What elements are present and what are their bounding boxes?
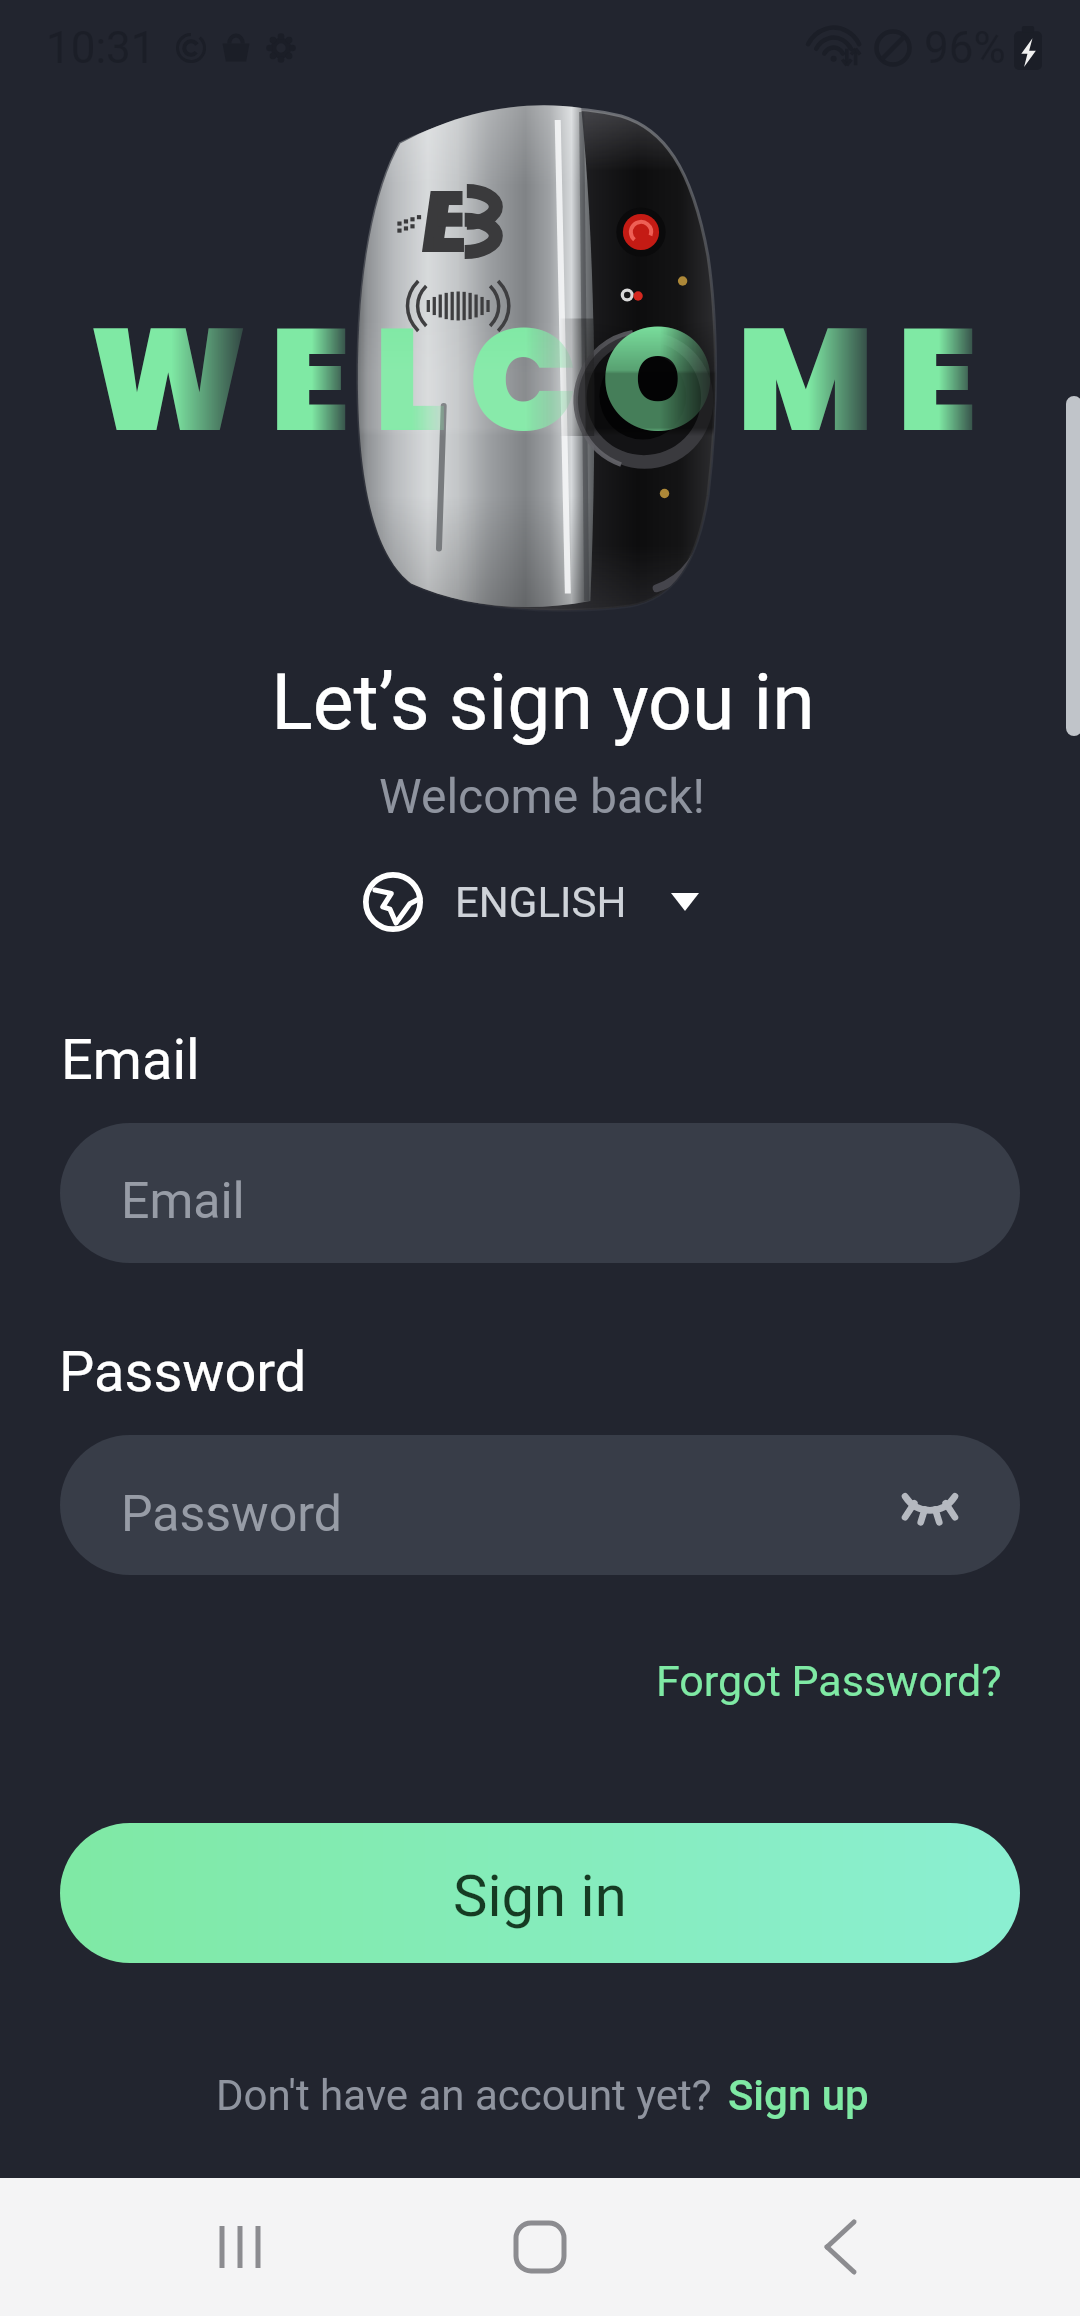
button[interactable]: Show password [884,1459,976,1551]
button[interactable]: Home [480,2187,600,2307]
button[interactable]: Forgot Password? [656,1650,1080,1712]
staticText: Email [121,1172,245,1231]
staticText: Don't have an account yet? [216,2071,712,2120]
staticText: Password [121,1485,342,1544]
staticText: Password [59,1339,307,1405]
staticText: ENGLISH [455,878,627,927]
staticText: O [601,279,715,481]
staticText: Let’s sign you in [3,658,1080,748]
staticText: W [89,279,248,481]
button[interactable]: Password [60,1435,1020,1575]
button[interactable]: Sign up [728,2071,869,2120]
staticText: Email [61,1027,200,1093]
button[interactable]: ENGLISH [355,866,707,938]
staticText: E [270,279,351,481]
staticText: E [897,279,978,481]
staticText: C [469,279,578,481]
button[interactable]: Email [60,1123,1020,1263]
button[interactable]: Recents [180,2187,300,2307]
button[interactable]: Back [780,2187,900,2307]
staticText: Sign in [453,1862,627,1930]
button[interactable]: Sign in [60,1823,1020,1963]
staticText: L [374,279,447,481]
staticText: M [737,279,874,481]
staticText: Welcome back! [2,768,1080,824]
